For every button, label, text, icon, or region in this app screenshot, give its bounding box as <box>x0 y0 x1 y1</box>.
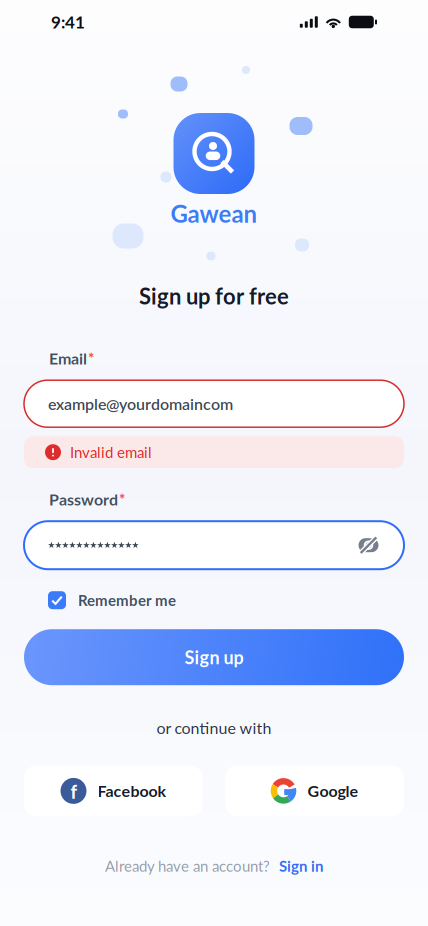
staticText: Sign in <box>279 857 323 875</box>
staticText: Invalid email <box>70 443 152 461</box>
staticText: Already have an account? <box>105 857 270 875</box>
staticText: Facebook <box>97 781 166 800</box>
button[interactable]: Google <box>225 765 404 816</box>
staticText: Google <box>307 781 358 800</box>
staticText: Email <box>49 349 87 368</box>
button[interactable]: f <box>24 765 203 816</box>
staticText: example@yourdomaincom <box>48 394 233 413</box>
button[interactable]: Sign in <box>279 857 323 875</box>
staticText: f <box>70 781 77 803</box>
staticText: Remember me <box>78 591 176 609</box>
staticText: * <box>88 349 94 367</box>
button[interactable]: Remember me <box>24 587 404 613</box>
staticText: or continue with <box>156 718 271 737</box>
staticText: Gawean <box>170 199 257 228</box>
staticText: Sign up for free <box>139 283 289 309</box>
staticText: Password <box>49 490 118 509</box>
staticText: Sign up <box>184 646 243 668</box>
button[interactable]: Sign up <box>24 629 404 685</box>
staticText: 9:41 <box>51 12 85 32</box>
staticText: * <box>119 490 125 508</box>
